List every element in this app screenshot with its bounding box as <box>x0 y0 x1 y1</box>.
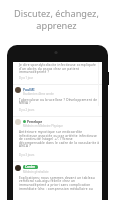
staticText: Étudiant en 4ème année <box>23 92 54 96</box>
staticText: immunodéprimé ? <box>19 70 49 74</box>
button[interactable]: PaulMI <box>15 87 104 96</box>
staticText: Discutez, échangez, apprenez <box>0 7 113 31</box>
staticText: Explications: nous sommes devant un tabl… <box>19 176 95 180</box>
staticText: MRSA ? <box>19 101 31 105</box>
button[interactable]: Contre <box>15 165 104 174</box>
staticText: Il y a 1 jour <box>19 76 33 80</box>
staticText: Penelope <box>27 119 43 123</box>
staticText: Tuberculose ou brucellose ? Développemen… <box>19 98 98 102</box>
staticText: Il y a 3 jours <box>19 153 35 157</box>
staticText: ANCA ? <box>19 144 31 148</box>
staticText: infectieuse associée ou par artérite inf… <box>19 134 98 138</box>
staticText: vertébral sub-aigu fébrile chez un <box>19 179 76 183</box>
staticText: PaulMI <box>23 87 35 91</box>
staticText: Médecin en Médecine Physique <box>23 124 63 128</box>
staticText: Contre <box>25 165 36 169</box>
staticText: immunodéprimé a priori sans complication <box>19 183 91 187</box>
staticText: décompensable dans le cadre de la vascul… <box>19 141 100 145</box>
button[interactable]: Penelope <box>15 119 104 128</box>
staticText: Médecin généraliste <box>23 170 49 174</box>
staticText: d'un abcès du psoas chez un patient <box>19 67 80 71</box>
staticText: de continuité (stage) +/- l'?brose <box>19 137 73 141</box>
staticText: immédiate (cho : compression médullaire … <box>19 187 93 191</box>
staticText: Antérieure mycotique sur endocardite <box>19 130 83 134</box>
staticText: Il y a 2 jours <box>19 108 35 112</box>
staticText: Je dire spondylodiscite infectieuse comp… <box>19 63 97 67</box>
